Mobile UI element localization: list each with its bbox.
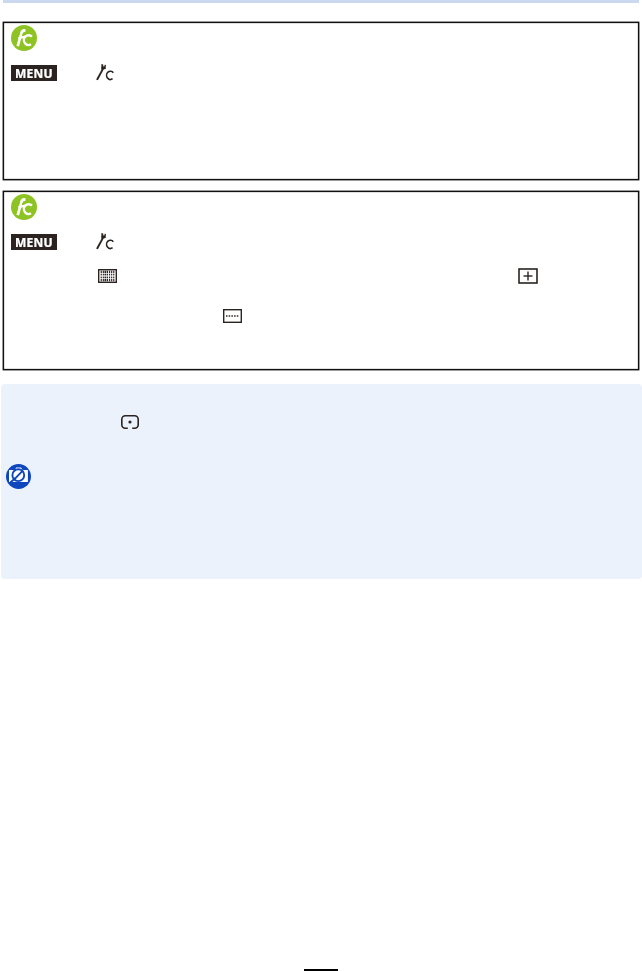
button[interactable]: No image bbox=[6, 464, 31, 489]
staticText: MENU bbox=[15, 234, 53, 250]
button[interactable]: fc home bbox=[3, 22, 639, 180]
button[interactable]: Grid view bbox=[98, 269, 117, 283]
button[interactable]: fc tools bbox=[94, 63, 116, 81]
button[interactable]: fc home bbox=[3, 191, 639, 370]
button[interactable]: MENU bbox=[11, 65, 57, 81]
button[interactable]: Dashed line style bbox=[223, 309, 242, 323]
button[interactable]: Add bbox=[519, 269, 537, 283]
button[interactable]: fc home bbox=[11, 25, 37, 51]
button[interactable]: Focus point bbox=[1, 384, 642, 579]
button[interactable]: MENU bbox=[11, 234, 57, 250]
button[interactable]: Focus point bbox=[121, 415, 139, 429]
staticText: MENU bbox=[15, 65, 53, 81]
button[interactable]: fc tools bbox=[94, 232, 116, 250]
button[interactable]: fc home bbox=[11, 194, 37, 220]
